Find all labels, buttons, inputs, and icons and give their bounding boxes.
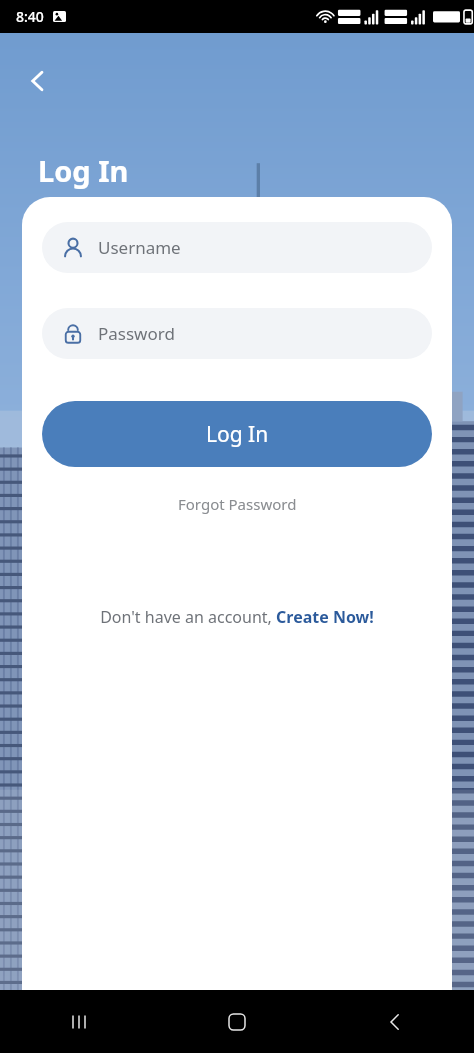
button[interactable]: Home — [158, 990, 316, 1053]
staticText: Log In — [206, 420, 269, 449]
button[interactable]: Forgot Password — [168, 489, 307, 519]
button[interactable]: Back — [316, 990, 474, 1053]
staticText: Password — [98, 322, 175, 345]
button[interactable]: Log In — [42, 401, 432, 467]
staticText: Log In — [38, 151, 129, 190]
staticText: Username — [98, 236, 181, 259]
button[interactable]: Don't have an account, Create Now! — [92, 601, 382, 633]
staticText: Forgot Password — [178, 494, 297, 514]
staticText: Don't have an account, Create Now! — [100, 606, 374, 628]
staticText: 8:40 — [16, 7, 44, 26]
button[interactable]: Password — [42, 308, 432, 359]
button[interactable]: Recent apps — [0, 990, 158, 1053]
button[interactable]: Back — [16, 59, 60, 103]
button[interactable]: Username — [42, 222, 432, 273]
